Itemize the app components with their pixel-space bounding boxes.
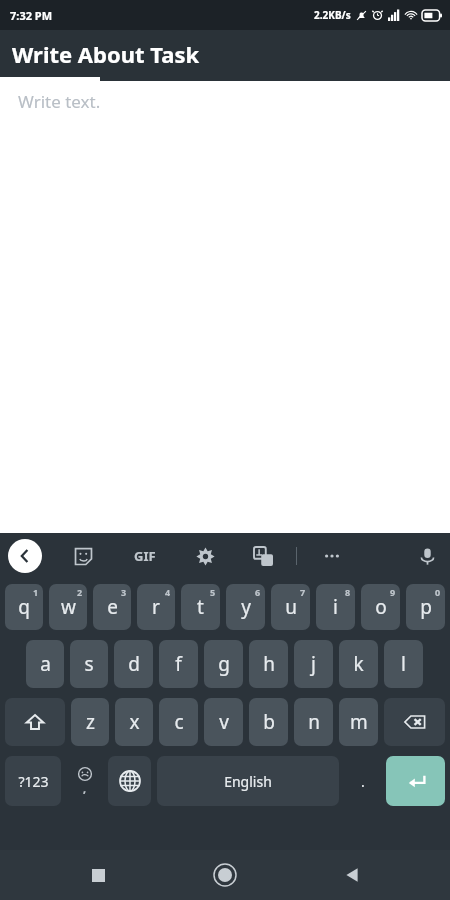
staticText: p	[420, 594, 432, 620]
staticText: English	[224, 772, 272, 791]
button[interactable]: n	[294, 698, 333, 746]
staticText: 0	[435, 586, 441, 598]
button[interactable]: h	[249, 640, 288, 688]
staticText: c	[174, 709, 184, 735]
staticText: 7:32 PM	[10, 8, 53, 23]
button[interactable]: Shift	[5, 698, 65, 746]
staticText: u	[285, 594, 297, 620]
button[interactable]: d	[114, 640, 153, 688]
staticText: 9	[390, 586, 396, 598]
staticText: t	[197, 594, 204, 620]
button[interactable]: v	[204, 698, 243, 746]
button[interactable]: Back	[8, 539, 42, 573]
staticText: ,	[83, 781, 87, 796]
staticText: a	[40, 651, 51, 677]
staticText: b	[263, 709, 275, 735]
button[interactable]: w	[49, 584, 87, 630]
button[interactable]: c	[159, 698, 198, 746]
staticText: l	[401, 651, 406, 677]
staticText: GIF	[134, 547, 156, 565]
button[interactable]: More options	[317, 541, 347, 571]
button[interactable]: Translate	[248, 541, 278, 571]
button[interactable]: .	[345, 756, 380, 806]
button[interactable]: Change language	[108, 756, 151, 806]
button[interactable]: b	[249, 698, 288, 746]
button[interactable]: y	[226, 584, 265, 630]
button[interactable]: i	[316, 584, 355, 630]
staticText: d	[128, 651, 140, 677]
staticText: 6	[255, 586, 261, 598]
staticText: x	[129, 709, 140, 735]
staticText: m	[350, 709, 368, 735]
staticText: v	[219, 709, 229, 735]
staticText: Write About Task	[12, 39, 200, 69]
button[interactable]: Enter	[386, 756, 445, 806]
button[interactable]: Emoji	[67, 756, 102, 806]
button[interactable]: z	[71, 698, 109, 746]
button[interactable]: GIF	[128, 539, 162, 573]
staticText: s	[84, 651, 94, 677]
button[interactable]: k	[339, 640, 378, 688]
staticText: w	[61, 594, 76, 620]
staticText: Write text.	[18, 90, 101, 113]
button[interactable]: t	[181, 584, 220, 630]
button[interactable]: l	[384, 640, 423, 688]
staticText: f	[175, 651, 182, 677]
button[interactable]: a	[26, 640, 64, 688]
button[interactable]: English	[157, 756, 339, 806]
button[interactable]: ?123	[5, 756, 61, 806]
staticText: y	[241, 594, 251, 620]
button[interactable]: o	[361, 584, 400, 630]
button[interactable]: s	[70, 640, 108, 688]
staticText: o	[375, 594, 387, 620]
staticText: q	[18, 594, 30, 620]
button[interactable]: e	[93, 584, 131, 630]
button[interactable]: Stickers	[68, 541, 98, 571]
staticText: ?123	[18, 772, 49, 791]
staticText: 2	[77, 586, 83, 598]
staticText: h	[263, 651, 275, 677]
staticText: z	[86, 709, 95, 735]
button[interactable]: x	[115, 698, 153, 746]
button[interactable]: m	[339, 698, 378, 746]
staticText: 1	[33, 586, 39, 598]
staticText: 2.2KB/s	[314, 8, 351, 22]
staticText: r	[152, 594, 160, 620]
staticText: g	[218, 651, 230, 677]
button[interactable]: q	[5, 584, 43, 630]
button[interactable]: Recent apps	[76, 853, 120, 897]
button[interactable]: p	[406, 584, 445, 630]
staticText: .	[361, 772, 365, 791]
staticText: 3	[121, 586, 127, 598]
button[interactable]: Home	[203, 853, 247, 897]
button[interactable]: Settings	[190, 541, 220, 571]
button[interactable]: u	[271, 584, 310, 630]
button[interactable]: j	[294, 640, 333, 688]
button[interactable]: f	[159, 640, 198, 688]
staticText: j	[311, 651, 316, 677]
staticText: 8	[345, 586, 351, 598]
staticText: i	[333, 594, 338, 620]
staticText: k	[353, 651, 364, 677]
button[interactable]: Back	[330, 853, 374, 897]
staticText: e	[107, 594, 118, 620]
button[interactable]: r	[137, 584, 175, 630]
staticText: 5	[210, 586, 216, 598]
button[interactable]: g	[204, 640, 243, 688]
staticText: 7	[300, 586, 306, 598]
staticText: 4	[165, 586, 171, 598]
button[interactable]: Backspace	[384, 698, 445, 746]
button[interactable]: Voice input	[412, 541, 442, 571]
staticText: n	[308, 709, 320, 735]
